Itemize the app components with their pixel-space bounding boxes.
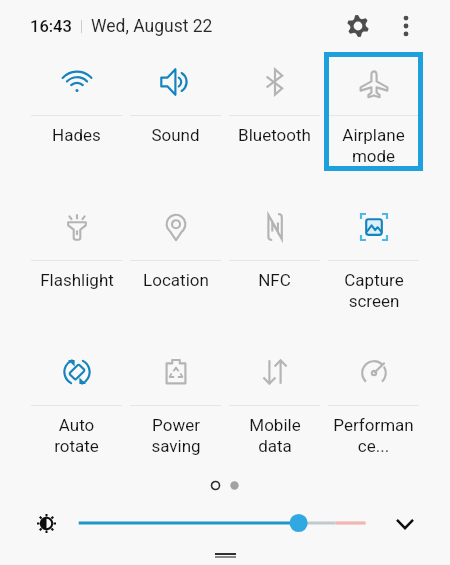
button[interactable]: Sound (126, 48, 225, 193)
staticText: Location (143, 270, 209, 290)
staticText: Performan ce... (333, 415, 414, 456)
button[interactable]: Mobile data (225, 338, 324, 483)
button[interactable]: Bluetooth (225, 48, 324, 193)
staticText: 16:43 (30, 17, 72, 36)
button[interactable]: Flashlight (27, 193, 126, 338)
button[interactable]: Expand panel (392, 511, 418, 535)
button[interactable]: Location (126, 193, 225, 338)
button[interactable]: Power saving (126, 338, 225, 483)
staticText: Hades (52, 125, 101, 145)
button[interactable]: Auto rotate (27, 338, 126, 483)
staticText: Flashlight (40, 270, 114, 290)
button[interactable]: More options (388, 8, 424, 44)
button[interactable]: Airplane mode (324, 52, 423, 171)
staticText: Mobile data (249, 415, 301, 456)
button[interactable]: NFC (225, 193, 324, 338)
staticText: Bluetooth (238, 125, 311, 145)
button[interactable] (73, 511, 371, 535)
staticText: NFC (258, 270, 291, 290)
staticText: Power saving (151, 415, 201, 456)
button[interactable]: Settings (340, 8, 376, 44)
staticText: Capture screen (344, 270, 404, 311)
button[interactable]: Hades (27, 48, 126, 193)
staticText: Wed, August 22 (91, 16, 213, 37)
button[interactable]: Brightness (34, 511, 58, 535)
staticText: Auto rotate (54, 415, 99, 456)
button[interactable]: Performan ce... (324, 338, 423, 483)
staticText: Sound (151, 125, 200, 145)
staticText: Airplane mode (342, 125, 405, 166)
button[interactable]: Capture screen (324, 193, 423, 338)
